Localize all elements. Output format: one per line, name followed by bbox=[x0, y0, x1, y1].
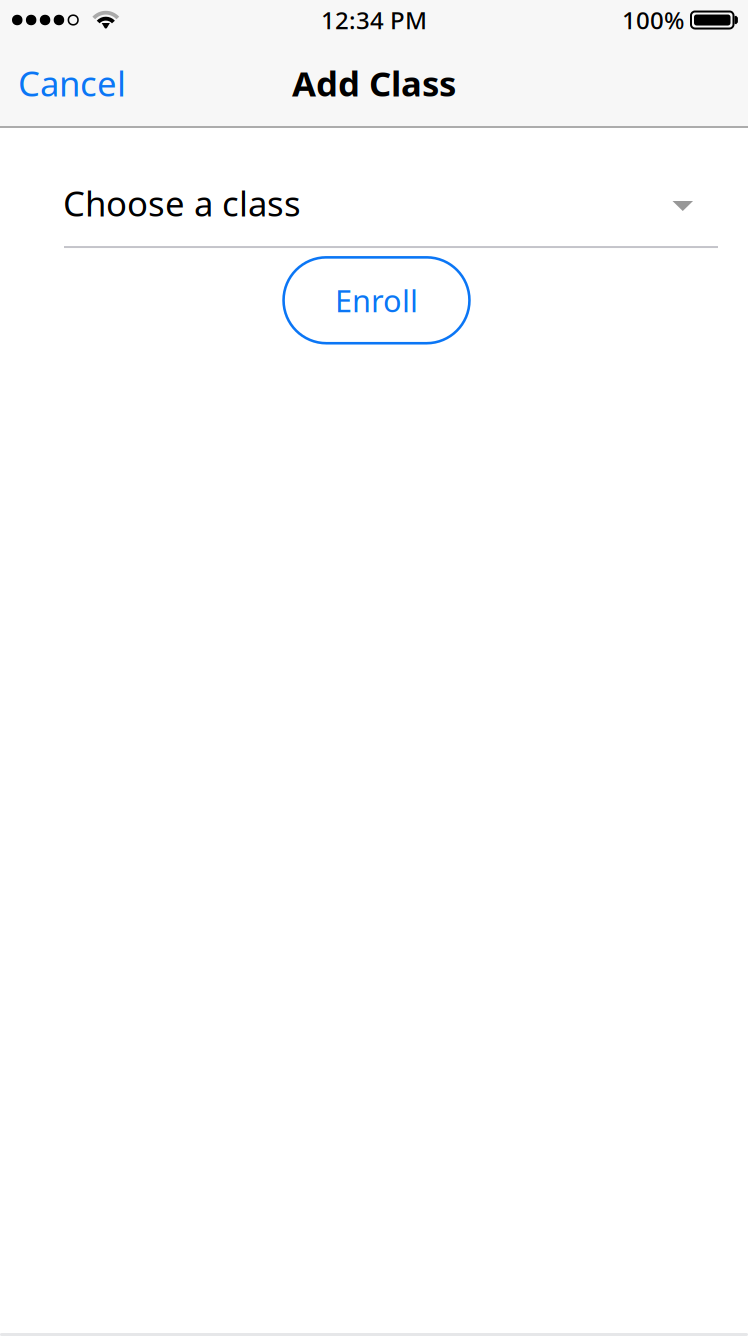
button[interactable]: Cancel bbox=[0, 40, 144, 126]
staticText: Cancel bbox=[18, 60, 126, 106]
staticText: Choose a class bbox=[63, 180, 301, 226]
staticText: Add Class bbox=[292, 60, 456, 106]
button[interactable]: Choose a class bbox=[0, 154, 748, 248]
staticText: 100% bbox=[622, 4, 684, 36]
staticText: 12:34 PM bbox=[321, 4, 427, 36]
button[interactable]: Enroll bbox=[282, 256, 471, 344]
staticText: Enroll bbox=[335, 280, 418, 321]
